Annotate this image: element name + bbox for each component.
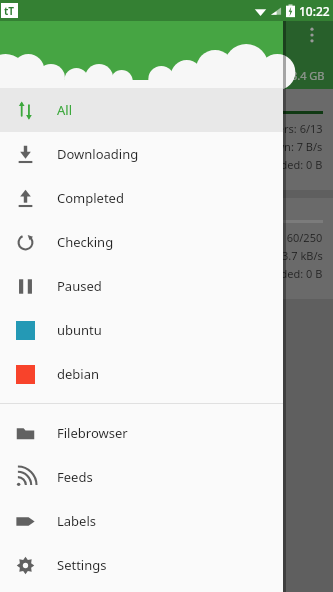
other: More options xyxy=(303,26,321,44)
button[interactable]: debian xyxy=(0,352,283,396)
staticText: Feeds xyxy=(57,468,93,486)
button[interactable]: Peers: 6/13 xyxy=(0,89,333,190)
button[interactable]: Labels xyxy=(0,499,283,543)
staticText: Checking xyxy=(57,233,114,251)
staticText: Settings xyxy=(57,556,107,574)
staticText: Paused xyxy=(57,277,102,295)
staticText: debian xyxy=(57,365,100,383)
staticText: Filebrowser xyxy=(57,424,128,442)
button[interactable]: Settings xyxy=(0,543,283,587)
staticText: ubuntu xyxy=(57,321,102,339)
staticText: 10:22 xyxy=(299,3,330,19)
staticText: Uploaded: 0 B xyxy=(250,266,323,281)
button[interactable]: Completed xyxy=(0,176,283,220)
staticText: Down: 23.7 kB/s xyxy=(240,248,323,263)
button[interactable]: Paused xyxy=(0,264,283,308)
staticText: Labels xyxy=(57,512,97,530)
button[interactable]: Feeds xyxy=(0,455,283,499)
button[interactable]: All xyxy=(0,88,283,132)
staticText: Uploaded: 0 B xyxy=(250,157,323,172)
button[interactable]: Downloading xyxy=(0,132,283,176)
button[interactable]: Checking xyxy=(0,220,283,264)
button[interactable]: ubuntu xyxy=(0,308,283,352)
staticText: Completed xyxy=(57,189,124,207)
staticText: Peers: 60/250 xyxy=(252,230,323,245)
button[interactable]: Filebrowser xyxy=(0,411,283,455)
staticText: Free space:3.4 GB xyxy=(233,68,325,83)
staticText: Downloading xyxy=(57,145,139,163)
staticText: All xyxy=(57,101,73,119)
staticText: Down: 7 B/s xyxy=(261,139,323,154)
button[interactable]: Peers: 60/250 xyxy=(0,198,333,299)
staticText: tT xyxy=(4,4,15,18)
staticText: Peers: 6/13 xyxy=(265,121,323,136)
